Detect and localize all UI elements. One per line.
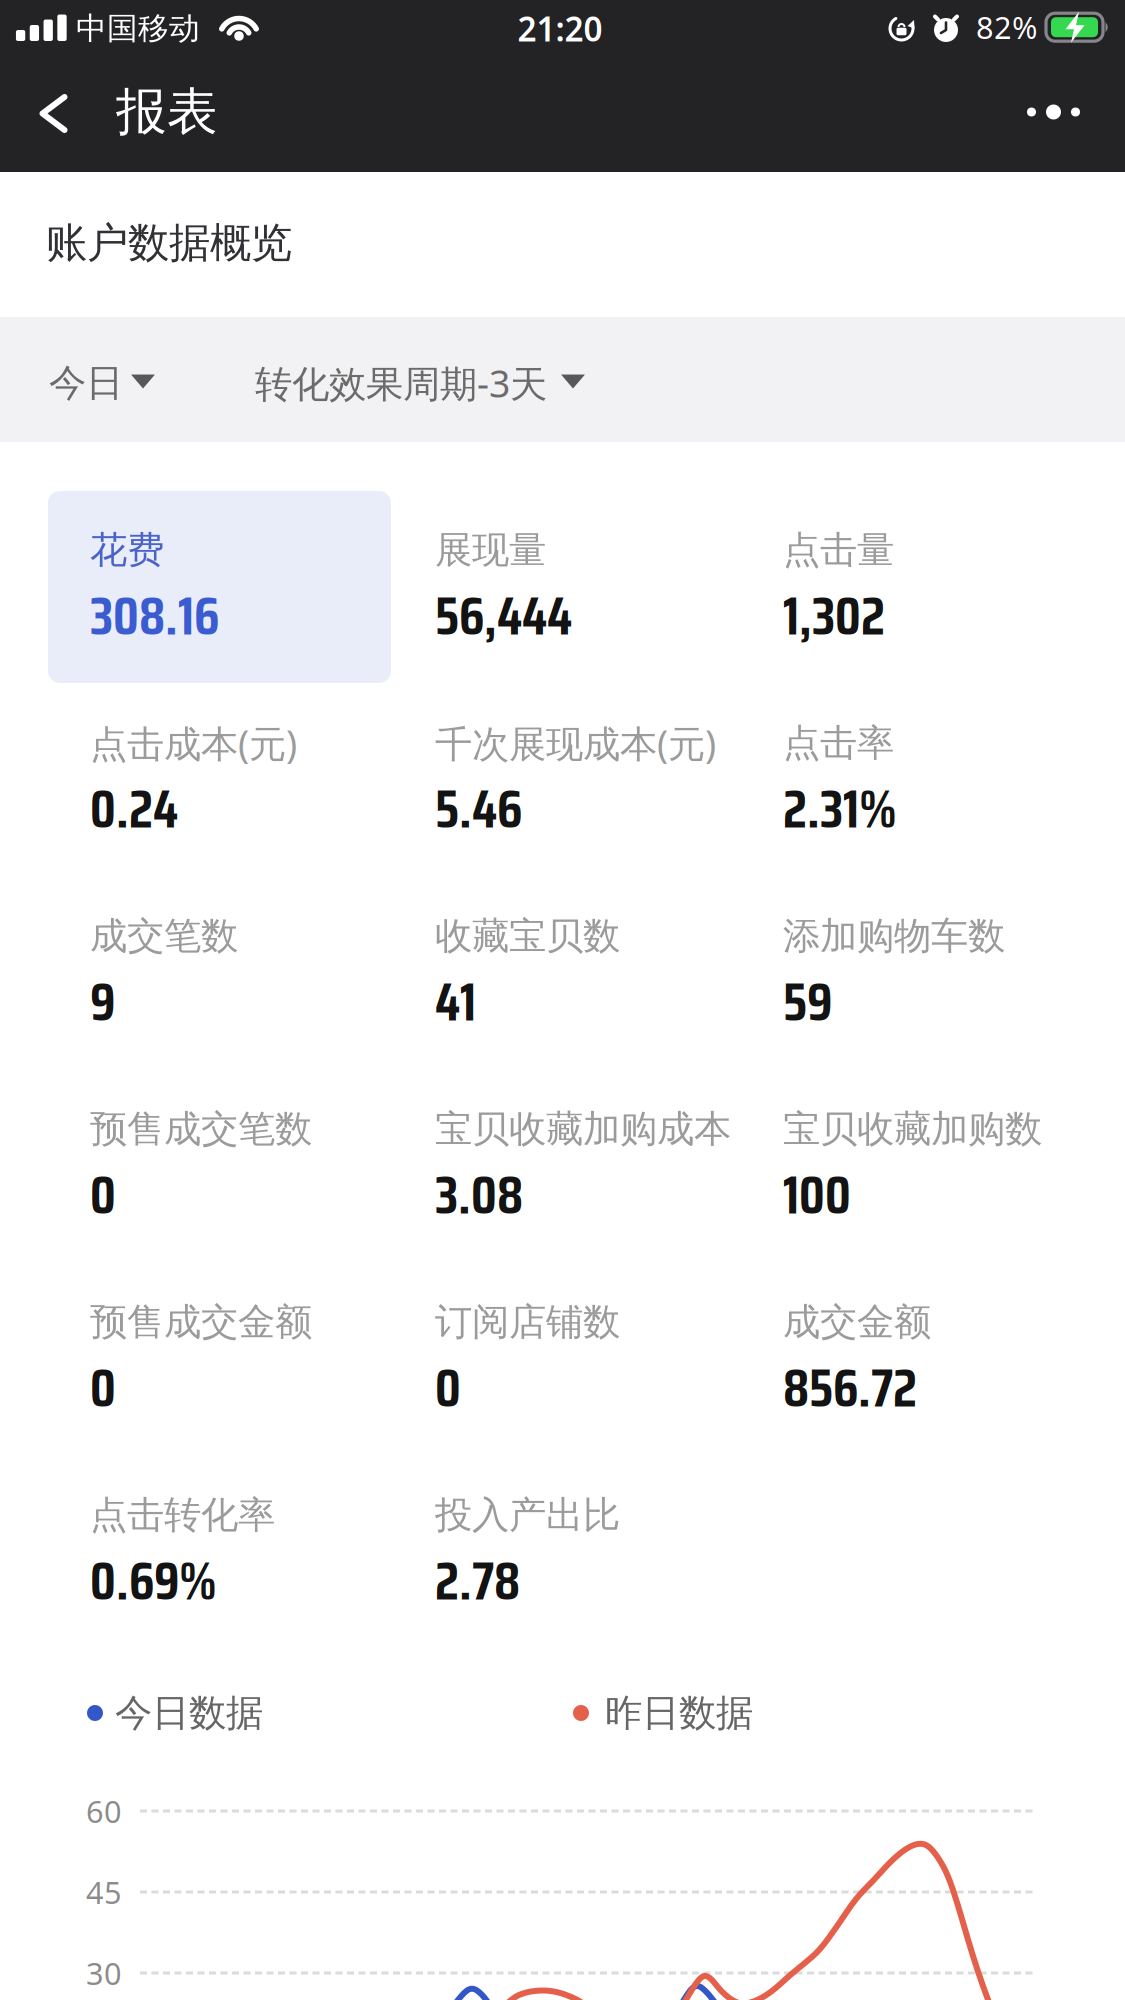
button[interactable]: 成交金额	[783, 1300, 1113, 1432]
staticText: 60	[86, 1791, 122, 1831]
staticText: 转化效果周期-3天	[255, 358, 547, 408]
staticText: 今日	[49, 360, 123, 406]
button[interactable]: 点击转化率	[90, 1493, 420, 1625]
staticText: 30	[86, 1953, 122, 1993]
staticText: 点击成本(元)	[90, 718, 297, 768]
button[interactable]: 花费	[48, 491, 391, 683]
button[interactable]: More	[1013, 82, 1093, 142]
staticText: 45	[86, 1872, 122, 1912]
staticText: 账户数据概览	[46, 218, 292, 268]
staticText: 报表	[116, 81, 218, 143]
staticText: 点击量	[783, 527, 894, 573]
staticText: 41	[435, 960, 476, 1044]
staticText: 59	[783, 960, 832, 1044]
button[interactable]: 点击成本(元)	[90, 721, 420, 853]
staticText: 投入产出比	[435, 1492, 620, 1538]
button[interactable]: 添加购物车数	[783, 914, 1113, 1046]
staticText: 点击转化率	[90, 1492, 275, 1538]
button[interactable]: 投入产出比	[435, 1493, 765, 1625]
button[interactable]: 点击率	[783, 721, 1113, 853]
staticText: 千次展现成本(元)	[435, 718, 716, 768]
staticText: 82%	[976, 7, 1037, 47]
staticText: 2.78	[435, 1539, 520, 1623]
button[interactable]: 千次展现成本(元)	[435, 721, 765, 853]
staticText: 5.46	[435, 767, 522, 851]
staticText: 0.24	[90, 767, 178, 851]
staticText: 收藏宝贝数	[435, 913, 620, 959]
staticText: 1,302	[783, 574, 885, 658]
staticText: 0	[435, 1346, 461, 1430]
button[interactable]: 宝贝收藏加购成本	[435, 1107, 765, 1239]
staticText: 21:20	[517, 6, 602, 51]
staticText: 今日数据	[115, 1690, 263, 1736]
staticText: 预售成交笔数	[90, 1106, 312, 1152]
staticText: 添加购物车数	[783, 913, 1005, 959]
button[interactable]: 宝贝收藏加购数	[783, 1107, 1113, 1239]
staticText: 0.69%	[90, 1539, 217, 1623]
button[interactable]: 订阅店铺数	[435, 1300, 765, 1432]
staticText: 0	[90, 1346, 116, 1430]
staticText: 昨日数据	[605, 1690, 753, 1736]
button[interactable]: 收藏宝贝数	[435, 914, 765, 1046]
staticText: 花费	[90, 527, 164, 573]
staticText: 56,444	[435, 574, 572, 658]
staticText: 成交金额	[783, 1299, 931, 1345]
staticText: 成交笔数	[90, 913, 238, 959]
staticText: 100	[783, 1153, 851, 1237]
staticText: 宝贝收藏加购成本	[435, 1106, 731, 1152]
staticText: 3.08	[435, 1153, 523, 1237]
button[interactable]: 成交笔数	[90, 914, 420, 1046]
staticText: 856.72	[783, 1346, 917, 1430]
button[interactable]: 今日	[49, 353, 155, 413]
button[interactable]: 预售成交金额	[90, 1300, 420, 1432]
staticText: 0	[90, 1153, 116, 1237]
staticText: 展现量	[435, 527, 546, 573]
staticText: 点击率	[783, 720, 894, 766]
button[interactable]: 转化效果周期-3天	[255, 353, 585, 413]
button[interactable]: 点击量	[783, 528, 1113, 660]
staticText: 预售成交金额	[90, 1299, 312, 1345]
button[interactable]: Back	[36, 91, 70, 136]
staticText: 9	[90, 960, 115, 1044]
button[interactable]: 预售成交笔数	[90, 1107, 420, 1239]
button[interactable]: 展现量	[435, 528, 765, 660]
staticText: 308.16	[90, 574, 219, 658]
staticText: 订阅店铺数	[435, 1299, 620, 1345]
staticText: 宝贝收藏加购数	[783, 1106, 1042, 1152]
staticText: 中国移动	[76, 10, 200, 47]
staticText: 2.31%	[783, 767, 897, 851]
